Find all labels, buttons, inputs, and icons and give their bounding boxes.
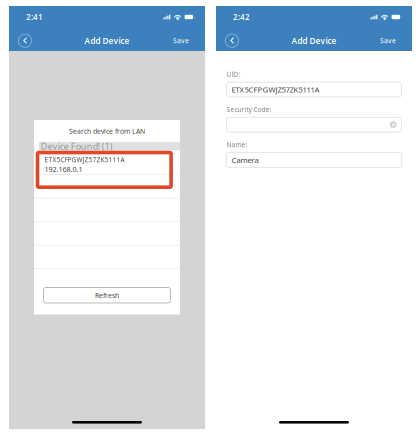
staticText: 2:41 [26,12,43,22]
button[interactable]: Refresh [43,287,170,303]
staticText: Refresh [95,291,119,300]
staticText: Security Code: [226,105,271,114]
button[interactable]: Back [14,30,36,52]
staticText: 2:42 [233,12,250,22]
staticText: Camera [231,155,258,165]
staticText: Save [173,36,189,45]
staticText: ETX5CFPGWJZ57ZK5111A [231,84,319,95]
staticText: Save [380,36,396,45]
staticText: Device Found! (1) [41,140,113,152]
staticText: Add Device [84,35,129,46]
button[interactable]: Save [376,30,400,52]
button[interactable]: Save [169,30,193,52]
staticText: UID: [226,70,240,79]
staticText: Add Device [291,35,336,46]
staticText: ETX5CFPGWJZ57ZK5111A [44,155,124,164]
button[interactable]: ETX5CFPGWJZ57ZK5111A [34,150,180,175]
staticText: Name: [226,140,247,149]
button[interactable]: Back [221,30,243,52]
staticText: 192.168.0.1 [44,164,82,174]
staticText: Search device from LAN [69,126,145,135]
